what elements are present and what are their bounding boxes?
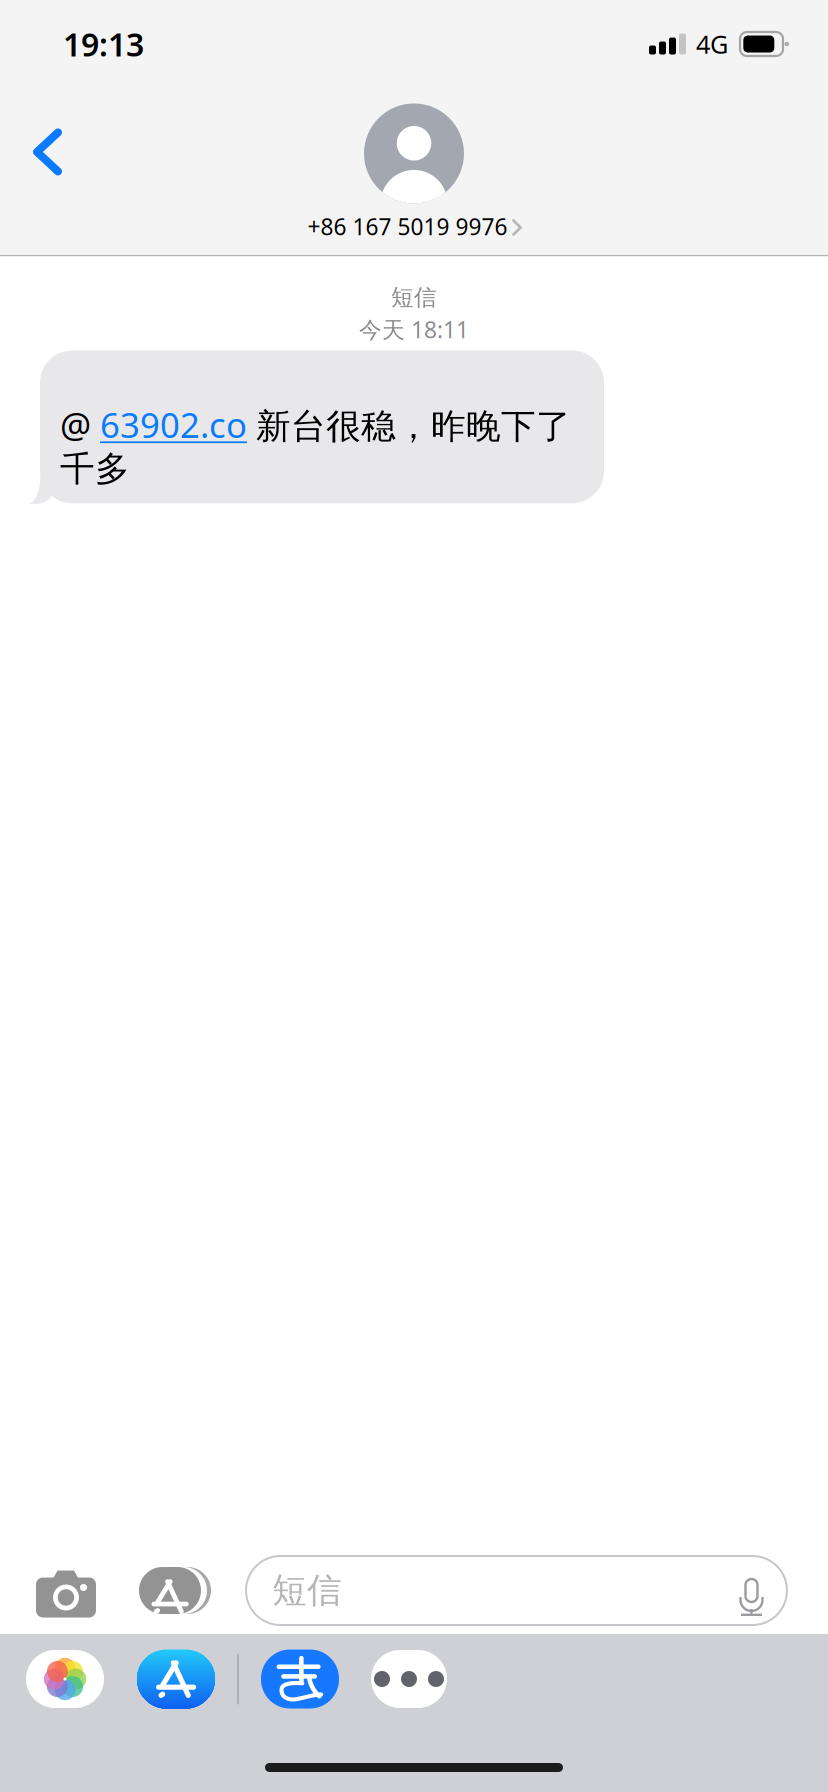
button[interactable]: +86 167 5019 9976	[307, 203, 520, 243]
staticText: +86 167 5019 9976	[307, 211, 507, 241]
button[interactable]: 短信	[246, 1556, 787, 1625]
button[interactable]: Back	[0, 99, 88, 201]
button[interactable]: App Store	[137, 1649, 215, 1708]
button[interactable]: Alipay	[261, 1649, 339, 1708]
staticText: @ 63902.co 新台很稳，昨晚下了千多	[60, 401, 571, 490]
staticText: 今天 18:11	[359, 314, 469, 344]
staticText: 短信	[272, 1569, 342, 1612]
button[interactable]: Photos	[26, 1650, 104, 1708]
button[interactable]: Apps	[139, 1567, 246, 1614]
staticText: 4G	[696, 27, 728, 61]
button[interactable]: More apps	[371, 1650, 447, 1708]
button[interactable]: Camera	[0, 1567, 139, 1614]
staticText: 19:13	[63, 23, 144, 65]
staticText: 短信	[391, 283, 437, 311]
